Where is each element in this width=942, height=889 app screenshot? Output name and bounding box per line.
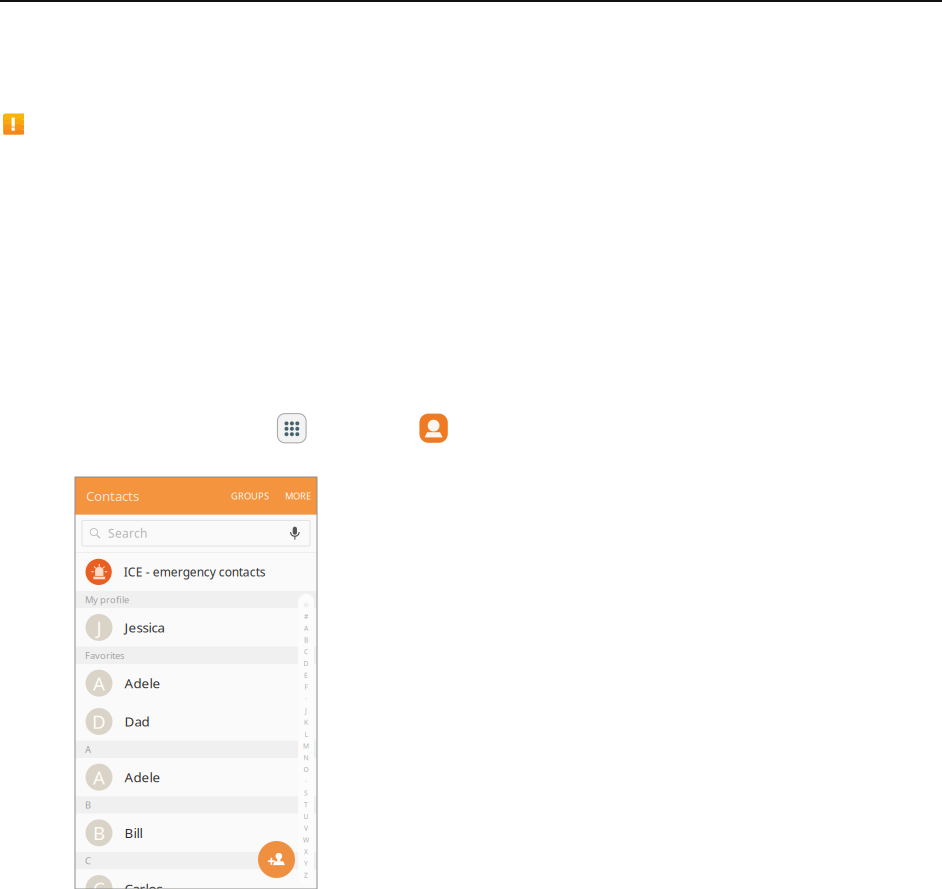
staticText: C <box>304 647 308 656</box>
button[interactable]: C <box>75 869 317 889</box>
staticText: B <box>304 635 308 644</box>
staticText: B <box>93 820 105 845</box>
button[interactable]: J <box>75 608 317 647</box>
staticText: ICE - emergency contacts <box>124 564 266 580</box>
staticText: A <box>93 765 105 790</box>
staticText: X <box>304 847 308 856</box>
staticText: C <box>85 854 91 867</box>
staticText: Favorites <box>85 649 124 661</box>
button[interactable]: B <box>75 814 317 852</box>
staticText: A <box>85 743 91 755</box>
staticText: Contacts <box>86 487 139 505</box>
staticText: Search <box>108 525 147 541</box>
staticText: M <box>303 741 309 750</box>
staticText: A <box>304 624 308 633</box>
staticText: Adele <box>124 768 160 786</box>
staticText: MORE <box>285 490 311 502</box>
staticText: W <box>303 835 309 844</box>
staticText: D <box>92 709 106 734</box>
staticText: · <box>305 694 307 703</box>
staticText: E <box>304 671 308 680</box>
staticText: N <box>304 753 309 762</box>
staticText: O <box>304 765 309 774</box>
staticText: # <box>304 612 308 621</box>
staticText: U <box>304 812 309 821</box>
staticText: A <box>93 671 105 696</box>
staticText: Y <box>304 859 308 868</box>
staticText: Jessica <box>124 619 164 636</box>
button[interactable]: Add contact <box>258 841 295 878</box>
staticText: B <box>85 799 91 811</box>
staticText: D <box>304 659 309 668</box>
staticText: K <box>304 718 308 727</box>
staticText: J <box>96 615 101 640</box>
staticText: Bill <box>124 824 142 842</box>
staticText: Carlos <box>124 880 162 889</box>
staticText: J <box>305 706 307 715</box>
staticText: V <box>304 824 308 833</box>
staticText: Z <box>304 871 308 880</box>
staticText: · <box>305 777 307 786</box>
staticText: L <box>305 730 308 738</box>
button[interactable]: MORE <box>278 484 317 508</box>
staticText: Adele <box>124 674 160 692</box>
staticText: GROUPS <box>231 490 269 502</box>
staticText: C <box>93 876 105 889</box>
staticText: My profile <box>85 593 129 606</box>
button[interactable]: A <box>75 758 317 796</box>
button[interactable]: ICE - emergency contacts <box>75 553 317 591</box>
button[interactable]: Search <box>75 515 317 552</box>
staticText: T <box>304 800 308 809</box>
staticText: S <box>304 788 308 797</box>
button[interactable]: D <box>75 702 317 741</box>
staticText: ☆ <box>303 601 309 608</box>
button[interactable]: A <box>75 664 317 702</box>
staticText: F <box>305 683 308 691</box>
button[interactable]: GROUPS <box>226 484 278 508</box>
staticText: Dad <box>124 713 149 730</box>
